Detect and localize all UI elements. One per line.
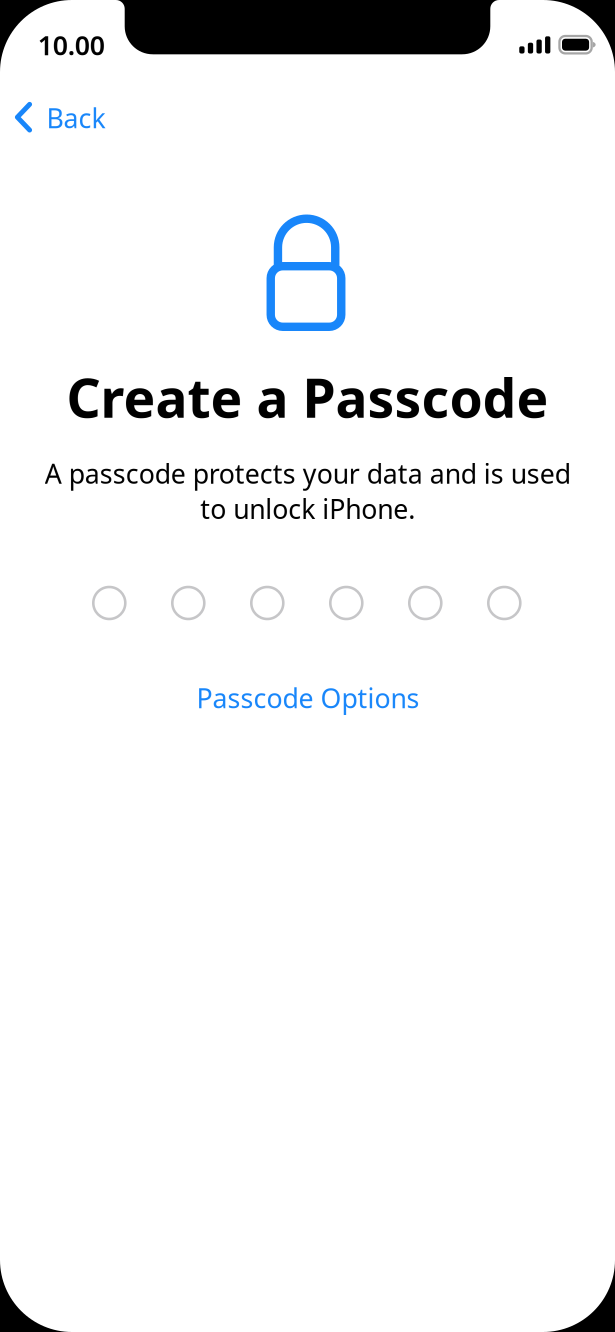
staticText: Passcode Options: [196, 680, 419, 716]
button[interactable]: Back: [0, 87, 112, 147]
staticText: 10.00: [38, 27, 105, 62]
staticText: A passcode protects your data and is use…: [44, 456, 570, 526]
button[interactable]: Passcode Options: [178, 669, 437, 727]
staticText: Back: [46, 100, 105, 135]
staticText: Create a Passcode: [66, 362, 548, 432]
